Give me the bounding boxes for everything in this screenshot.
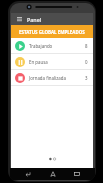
staticText: ESTATUS GLOBAL EMPLEADOS: [19, 29, 85, 35]
staticText: Panel: [27, 16, 42, 23]
staticText: En pausa: [29, 59, 48, 65]
button[interactable]: Home: [47, 168, 59, 180]
staticText: 3: [85, 75, 88, 81]
button[interactable]: Jornada finalizada: [11, 70, 93, 85]
staticText: Trabajando: [29, 43, 53, 49]
staticText: 0: [85, 59, 88, 65]
button[interactable]: Recent apps: [71, 168, 83, 180]
staticText: 8: [85, 43, 88, 49]
button[interactable]: Back: [22, 168, 34, 180]
button[interactable]: Trabajando: [11, 38, 93, 53]
button[interactable]: Open navigation drawer: [15, 15, 23, 23]
staticText: Jornada finalizada: [29, 75, 66, 81]
button[interactable]: ESTATUS GLOBAL EMPLEADOS: [11, 25, 93, 38]
button[interactable]: En pausa: [11, 54, 93, 69]
